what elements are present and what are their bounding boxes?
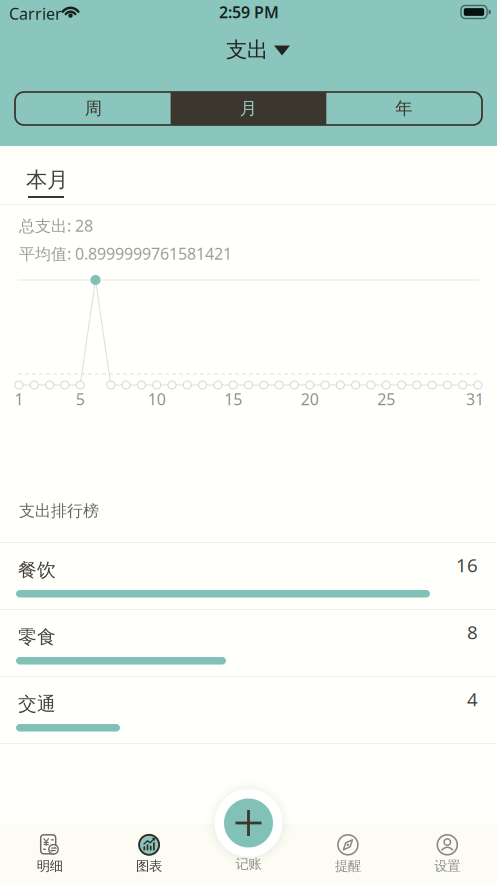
staticText: 设置: [434, 858, 460, 874]
staticText: 25: [377, 388, 395, 410]
staticText: 明细: [37, 858, 63, 874]
staticText: 16: [456, 553, 478, 577]
staticText: 餐饮: [18, 558, 56, 581]
button[interactable]: 周: [16, 92, 171, 125]
button[interactable]: 餐饮: [0, 543, 497, 883]
staticText: 本月: [26, 167, 68, 193]
staticText: 交通: [18, 692, 56, 715]
staticText: 记账: [235, 856, 261, 872]
staticText: 提醒: [335, 858, 361, 874]
button[interactable]: 年: [326, 92, 481, 125]
button[interactable]: 交通: [0, 677, 497, 883]
staticText: 总支出: 28: [19, 215, 93, 236]
button[interactable]: 零食: [0, 610, 497, 883]
staticText: 31: [466, 388, 484, 410]
staticText: 4: [467, 687, 478, 711]
staticText: 支出排行榜: [19, 501, 99, 521]
staticText: 支出: [226, 37, 268, 63]
staticText: 年: [395, 98, 412, 119]
button[interactable]: 设置: [434, 834, 460, 874]
staticText: 图表: [136, 858, 162, 874]
staticText: 5: [76, 388, 85, 410]
button[interactable]: 本月: [14, 158, 80, 202]
button[interactable]: 明细: [37, 834, 63, 874]
button[interactable]: 月: [171, 92, 326, 125]
button[interactable]: 图表: [136, 834, 162, 874]
button[interactable]: 记账: [224, 798, 273, 847]
button[interactable]: 支出: [213, 34, 303, 65]
staticText: 平均值: 0.8999999761581421: [19, 243, 232, 264]
staticText: 1: [14, 388, 23, 410]
staticText: 零食: [18, 625, 56, 648]
staticText: 2:59 PM: [219, 1, 279, 23]
staticText: Carrier: [9, 3, 62, 24]
staticText: 15: [224, 388, 242, 410]
staticText: 8: [467, 620, 478, 644]
staticText: 周: [85, 98, 102, 119]
staticText: 月: [240, 98, 257, 119]
staticText: 10: [148, 388, 166, 410]
staticText: 20: [301, 388, 319, 410]
button[interactable]: 提醒: [335, 834, 361, 874]
